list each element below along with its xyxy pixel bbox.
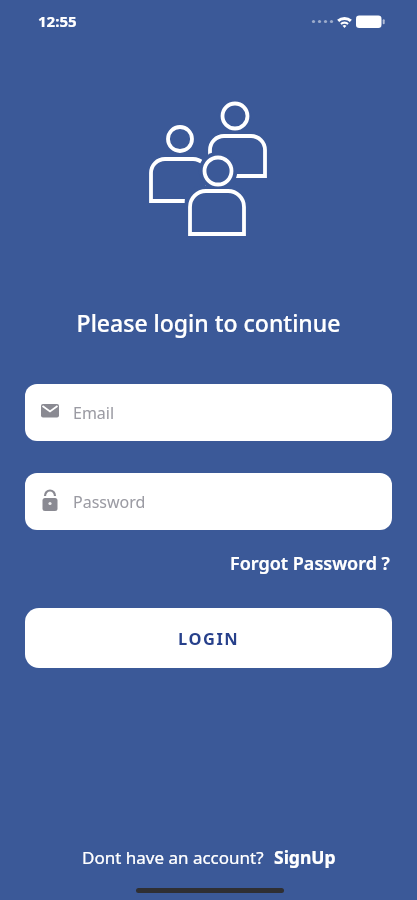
button[interactable]: Password [25,473,392,530]
button[interactable]: LOGIN [25,608,392,668]
staticText: Dont have an account? [82,846,264,869]
staticText: LOGIN [178,627,240,649]
button[interactable]: Forgot Password ? [230,551,390,576]
button[interactable]: SignUp [274,845,336,869]
staticText: 12:55 [38,11,77,31]
staticText: Password [73,491,146,513]
staticText: Email [73,402,115,424]
staticText: Please login to continue [0,307,417,338]
button[interactable]: Email [25,384,392,441]
